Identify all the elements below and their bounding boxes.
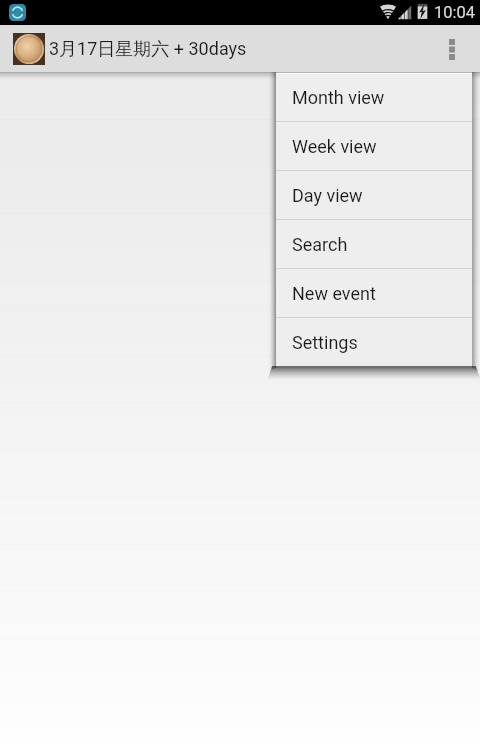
button[interactable]: Day view bbox=[276, 171, 472, 219]
button[interactable]: Settings bbox=[276, 318, 472, 366]
staticText: New event bbox=[292, 283, 376, 304]
button[interactable]: Month view bbox=[276, 74, 472, 121]
button[interactable]: New event bbox=[276, 269, 472, 317]
staticText: Day view bbox=[292, 185, 363, 206]
button[interactable]: Search bbox=[276, 220, 472, 268]
button[interactable]: Week view bbox=[276, 122, 472, 170]
button[interactable]: More options bbox=[424, 25, 480, 73]
staticText: Settings bbox=[292, 332, 358, 353]
staticText: Month view bbox=[292, 87, 385, 108]
staticText: Search bbox=[292, 234, 348, 255]
button[interactable]: 3月17日星期六 + 30days bbox=[0, 25, 257, 73]
staticText: Week view bbox=[292, 136, 377, 157]
staticText: 10:04 bbox=[434, 3, 476, 22]
staticText: 3月17日星期六 + 30days bbox=[49, 38, 247, 61]
